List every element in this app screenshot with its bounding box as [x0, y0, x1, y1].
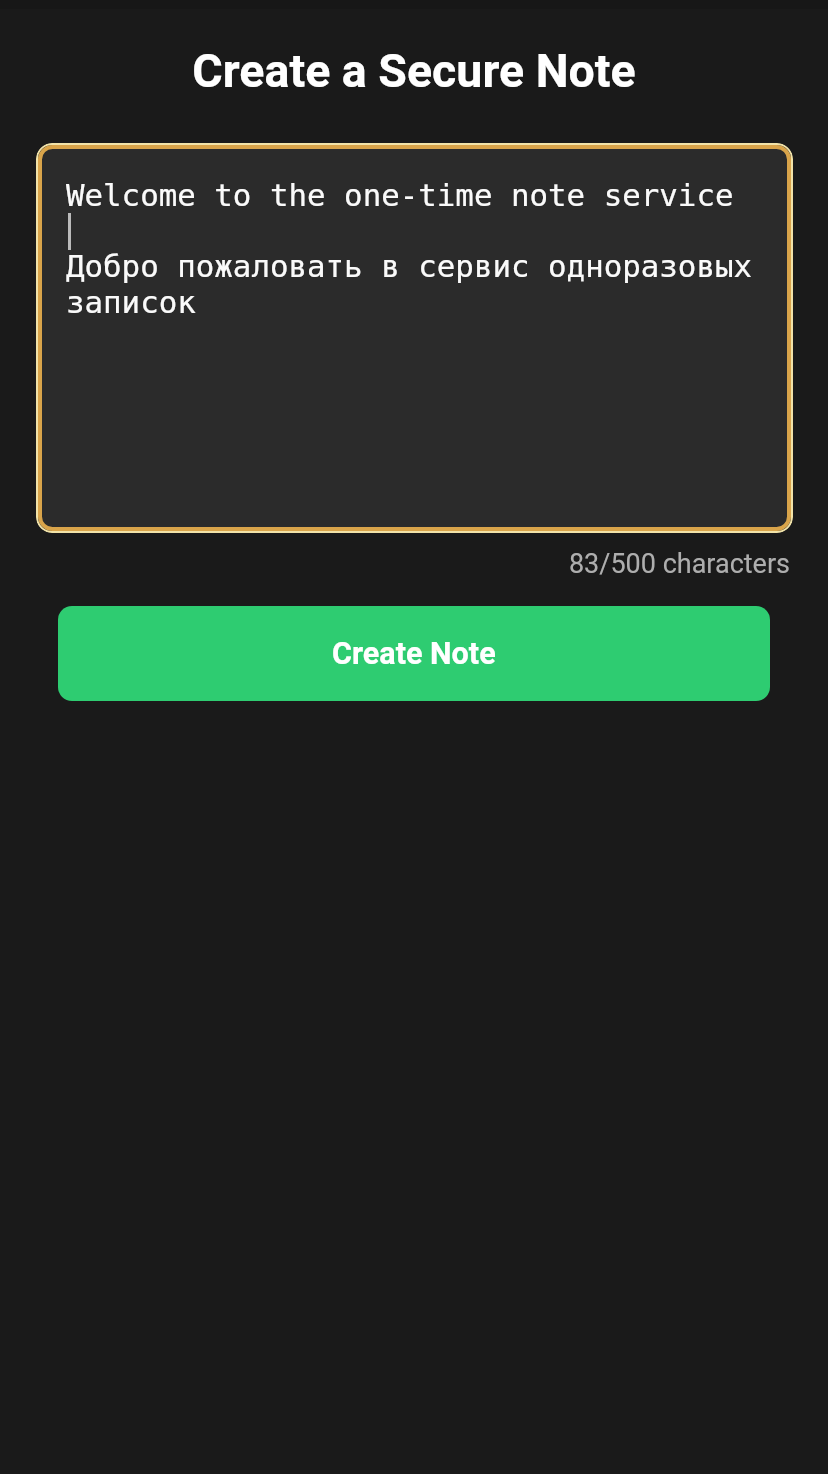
button[interactable]: Create Note: [58, 606, 770, 701]
staticText: 83/500 characters: [0, 548, 790, 580]
staticText: Create Note: [332, 636, 496, 672]
button[interactable]: Secure note text field: [38, 145, 791, 531]
staticText: Welcome to the one-time note service Доб…: [66, 177, 793, 321]
staticText: Create a Secure Note: [0, 44, 828, 98]
